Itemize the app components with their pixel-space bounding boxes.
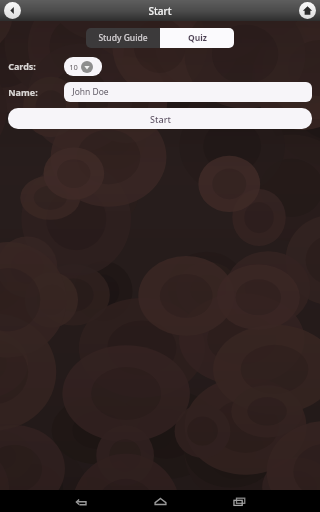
button[interactable]: 10 bbox=[64, 57, 102, 76]
button[interactable]: John Doe bbox=[64, 82, 312, 102]
button[interactable]: Home bbox=[145, 490, 175, 512]
staticText: Study Guide bbox=[98, 32, 148, 44]
button[interactable]: Study Guide bbox=[86, 28, 160, 48]
staticText: 10 bbox=[69, 62, 78, 72]
staticText: Cards: bbox=[8, 60, 36, 72]
staticText: Quiz bbox=[188, 32, 207, 44]
staticText: Start bbox=[150, 113, 171, 125]
button[interactable]: Back bbox=[66, 490, 96, 512]
staticText: Start bbox=[148, 4, 172, 18]
button[interactable]: Recent apps bbox=[224, 490, 254, 512]
button[interactable]: Start bbox=[8, 108, 312, 129]
staticText: John Doe bbox=[72, 86, 109, 98]
button[interactable]: Quiz bbox=[160, 28, 234, 48]
button[interactable]: Home bbox=[299, 2, 316, 19]
staticText: Name: bbox=[8, 86, 38, 98]
button[interactable]: Back bbox=[4, 2, 21, 19]
